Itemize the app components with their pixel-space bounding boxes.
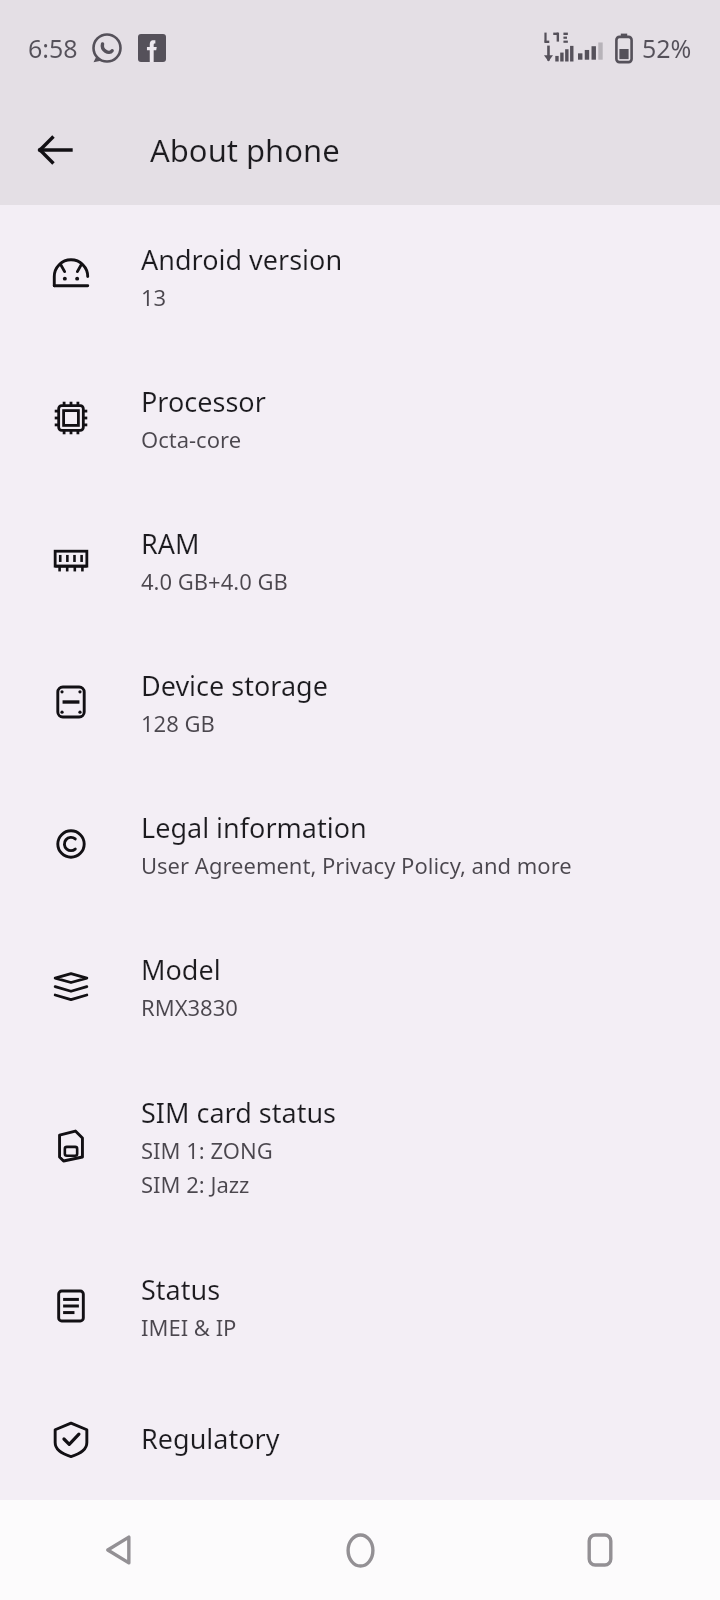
button[interactable]: Status [0, 1235, 720, 1377]
staticText: Status [141, 1271, 221, 1308]
button[interactable]: Home [240, 1500, 480, 1600]
button[interactable]: RAM [0, 489, 720, 631]
button[interactable]: Regulatory [0, 1377, 720, 1500]
staticText: RMX3830 [141, 992, 238, 1022]
button[interactable]: Android version [0, 205, 720, 347]
staticText: User Agreement, Privacy Policy, and more [141, 850, 572, 880]
staticText: About phone [150, 129, 340, 171]
staticText: Android version [141, 241, 343, 278]
staticText: SIM 2: Jazz [141, 1169, 250, 1199]
staticText: Legal information [141, 809, 367, 846]
staticText: IMEI & IP [141, 1312, 237, 1342]
staticText: SIM card status [141, 1094, 337, 1131]
staticText: SIM 1: ZONG [141, 1135, 273, 1165]
staticText: 13 [141, 282, 167, 312]
staticText: Octa-core [141, 424, 242, 454]
staticText: Model [141, 951, 221, 988]
button[interactable]: Back [22, 117, 88, 183]
staticText: 52% [642, 31, 692, 65]
staticText: Regulatory [141, 1420, 280, 1457]
button[interactable]: Recent apps [480, 1500, 720, 1600]
staticText: 4.0 GB+4.0 GB [141, 566, 288, 596]
button[interactable]: Device storage [0, 631, 720, 773]
button[interactable]: Model [0, 915, 720, 1057]
staticText: 128 GB [141, 708, 215, 738]
button[interactable]: SIM card status [0, 1057, 720, 1235]
staticText: 6:58 [28, 31, 78, 65]
button[interactable]: Back [0, 1500, 240, 1600]
button[interactable]: Legal information [0, 773, 720, 915]
staticText: Processor [141, 383, 266, 420]
staticText: RAM [141, 525, 200, 562]
button[interactable]: Processor [0, 347, 720, 489]
staticText: Device storage [141, 667, 328, 704]
